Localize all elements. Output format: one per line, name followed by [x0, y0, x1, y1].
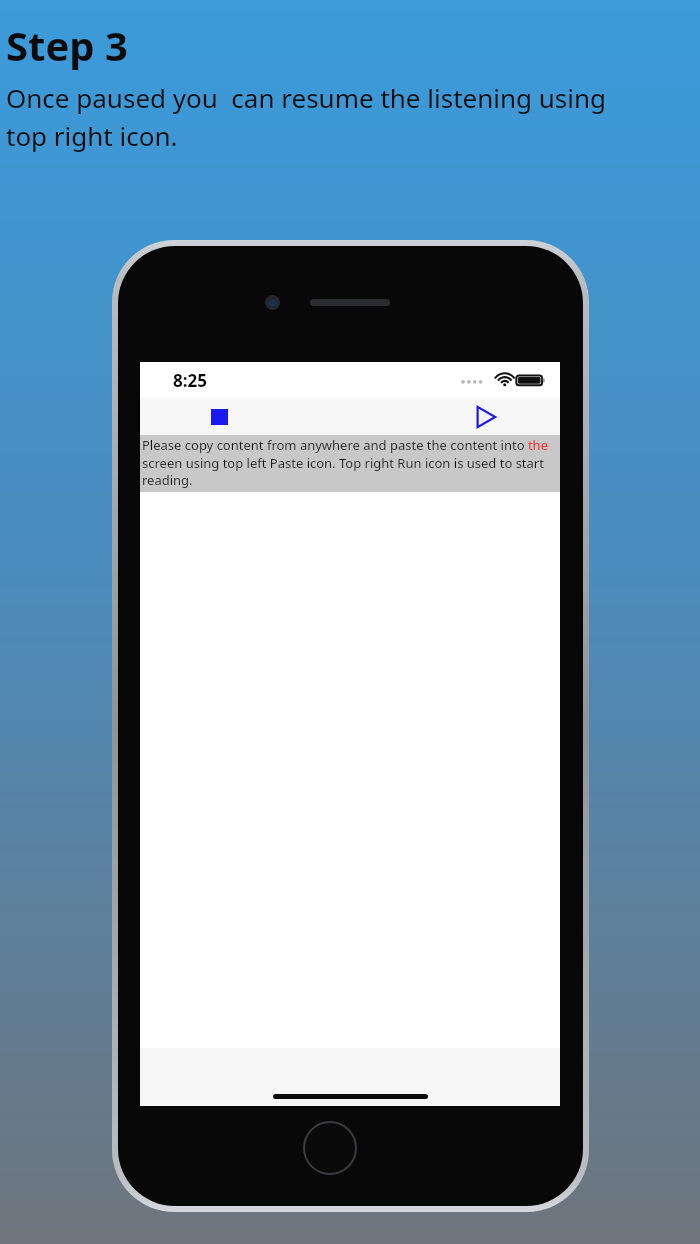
staticText: Step 3 — [6, 18, 128, 72]
staticText: 8:25 — [173, 369, 207, 392]
other: Home — [302, 1120, 358, 1176]
button[interactable]: Paste — [202, 400, 236, 434]
button[interactable]: Run — [469, 400, 503, 434]
button[interactable]: Please copy content from anywhere and pa… — [140, 435, 560, 492]
staticText: Once paused you can resume the listening… — [6, 80, 646, 153]
staticText: Please copy content from anywhere and pa… — [142, 436, 558, 489]
